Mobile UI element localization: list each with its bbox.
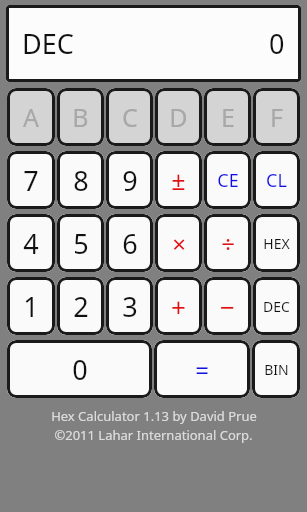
staticText: DEC (263, 297, 290, 316)
staticText: 9 (122, 162, 138, 199)
button[interactable]: DEC (6, 5, 301, 82)
button[interactable]: 2 (57, 277, 104, 335)
button[interactable]: 9 (106, 151, 153, 209)
button[interactable]: 5 (57, 214, 104, 272)
staticText: 4 (23, 225, 39, 262)
button[interactable]: BIN (252, 340, 300, 398)
staticText: 5 (73, 225, 89, 262)
staticText: 0 (72, 351, 88, 388)
button[interactable]: 6 (106, 214, 153, 272)
button[interactable]: − (204, 277, 251, 335)
button[interactable]: ÷ (204, 214, 251, 272)
staticText: A (23, 100, 39, 134)
staticText: 0 (269, 25, 285, 62)
staticText: 8 (73, 162, 89, 199)
button[interactable]: B (57, 88, 104, 146)
button[interactable]: × (155, 214, 202, 272)
button[interactable]: CL (253, 151, 300, 209)
staticText: BIN (264, 360, 289, 379)
staticText: CE (217, 168, 239, 193)
staticText: 7 (23, 162, 39, 199)
staticText: − (220, 289, 235, 324)
staticText: C (122, 100, 138, 134)
staticText: ©2011 Lahar International Corp. (54, 426, 253, 444)
staticText: D (169, 100, 188, 134)
staticText: ± (171, 163, 186, 197)
button[interactable]: 0 (7, 340, 152, 398)
button[interactable]: 8 (57, 151, 104, 209)
button[interactable]: E (204, 88, 251, 146)
button[interactable]: A (7, 88, 55, 146)
staticText: 1 (23, 288, 39, 325)
button[interactable]: = (154, 340, 250, 398)
button[interactable]: + (155, 277, 202, 335)
staticText: × (172, 227, 186, 260)
staticText: HEX (263, 234, 290, 253)
button[interactable]: HEX (253, 214, 300, 272)
staticText: E (221, 100, 235, 134)
button[interactable]: 4 (7, 214, 55, 272)
staticText: + (171, 289, 186, 324)
staticText: DEC (22, 25, 74, 62)
button[interactable]: DEC (253, 277, 300, 335)
staticText: = (195, 353, 209, 386)
staticText: B (72, 100, 89, 134)
staticText: F (270, 100, 283, 134)
button[interactable]: D (155, 88, 202, 146)
staticText: 2 (73, 288, 89, 325)
button[interactable]: 3 (106, 277, 153, 335)
button[interactable]: F (253, 88, 300, 146)
staticText: 6 (122, 225, 138, 262)
button[interactable]: ± (155, 151, 202, 209)
staticText: Hex Calculator 1.13 by David Prue (51, 407, 257, 425)
button[interactable]: CE (204, 151, 251, 209)
button[interactable]: C (106, 88, 153, 146)
staticText: ÷ (221, 227, 235, 260)
staticText: CL (266, 168, 287, 193)
staticText: 3 (122, 288, 138, 325)
button[interactable]: 7 (7, 151, 55, 209)
button[interactable]: 1 (7, 277, 55, 335)
